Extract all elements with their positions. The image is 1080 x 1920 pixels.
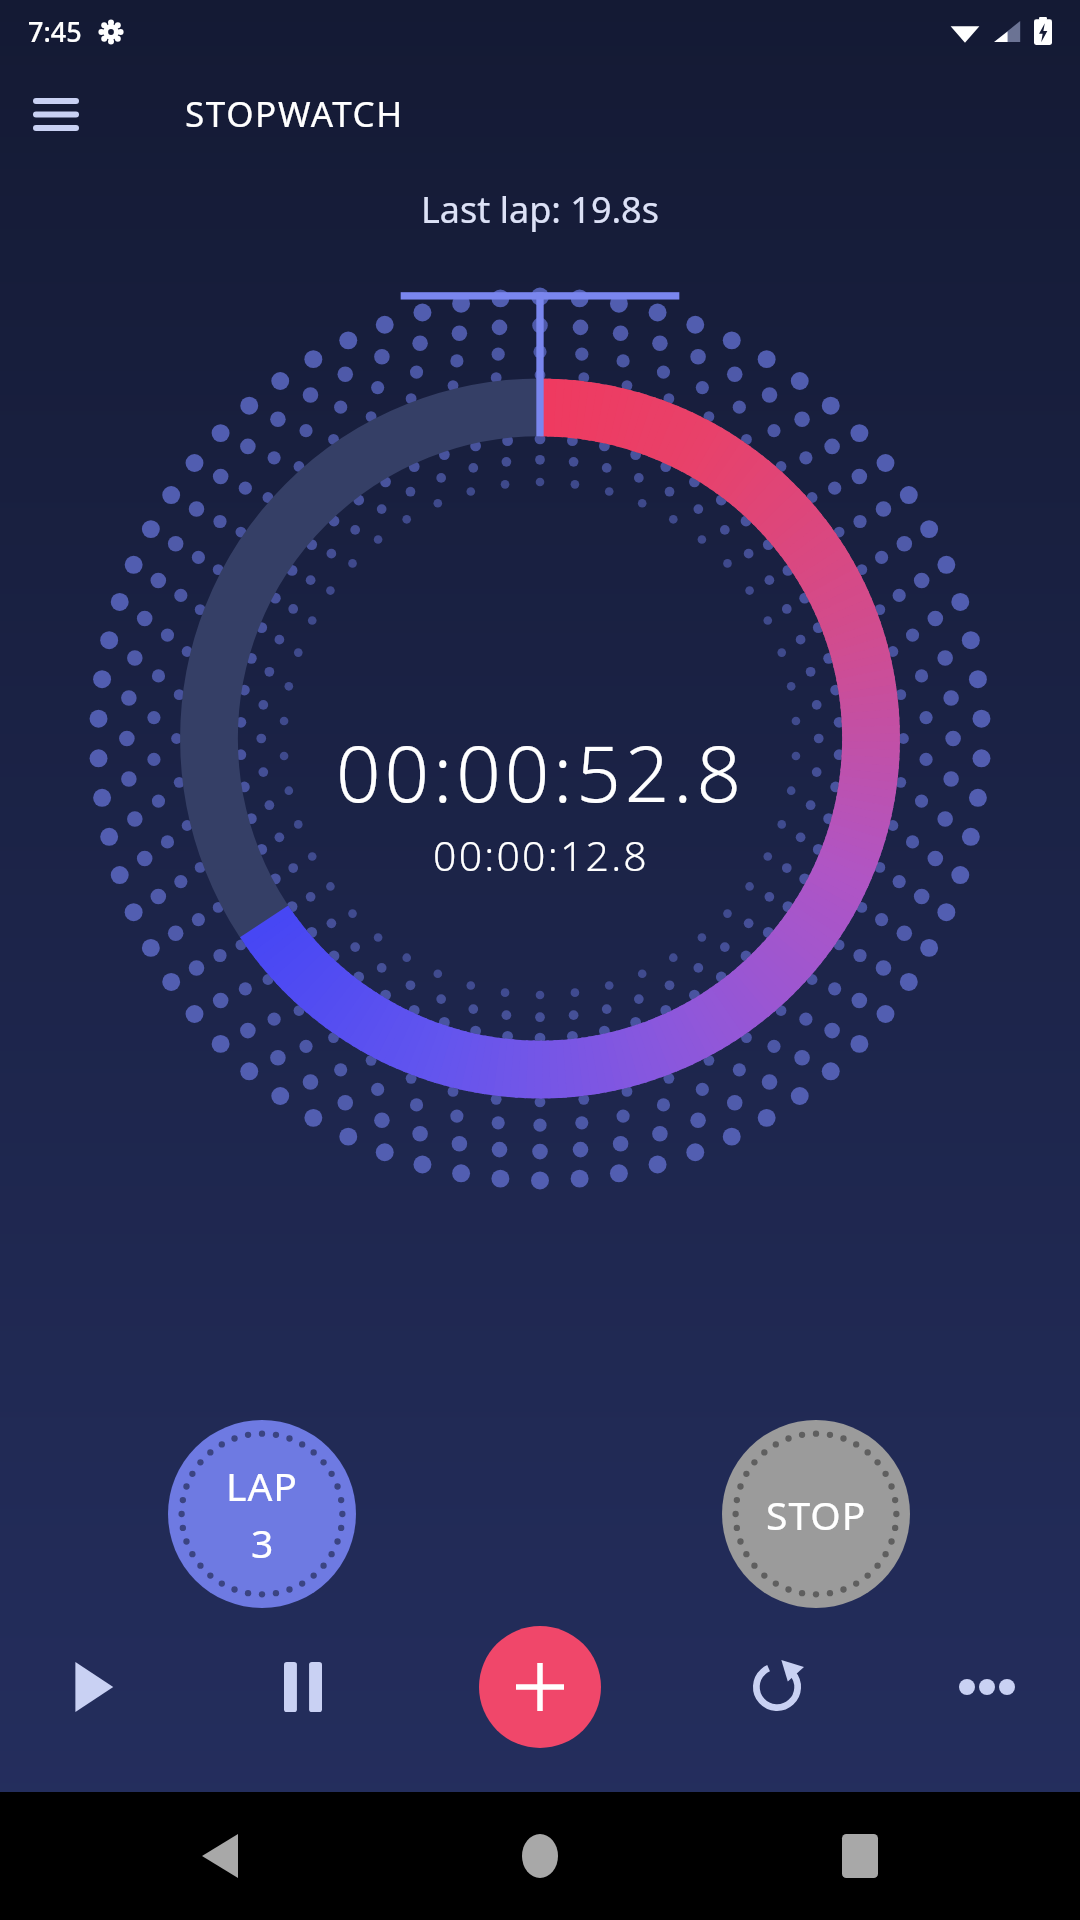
button[interactable]: More options [942, 1642, 1032, 1732]
button[interactable]: Home [500, 1816, 580, 1896]
button[interactable]: Menu [20, 78, 92, 150]
staticText: 3 [251, 1516, 274, 1569]
staticText: 00:00:52.8 [336, 719, 745, 825]
staticText: Last lap: 19.8s [421, 185, 659, 234]
staticText: LAP [226, 1459, 298, 1512]
staticText: STOP [766, 1488, 867, 1541]
staticText: 00:00:12.8 [433, 827, 649, 883]
button[interactable]: STOP [722, 1420, 910, 1608]
button[interactable]: Recent apps [820, 1816, 900, 1896]
staticText: STOPWATCH [185, 90, 404, 138]
button[interactable]: Back [180, 1816, 260, 1896]
button[interactable]: Add lap timer [479, 1626, 601, 1748]
staticText: 7:45 [28, 13, 82, 50]
button[interactable]: Pause [258, 1642, 348, 1732]
button[interactable]: Reset [732, 1642, 822, 1732]
button[interactable]: LAP [168, 1420, 356, 1608]
button[interactable]: Start [48, 1642, 138, 1732]
